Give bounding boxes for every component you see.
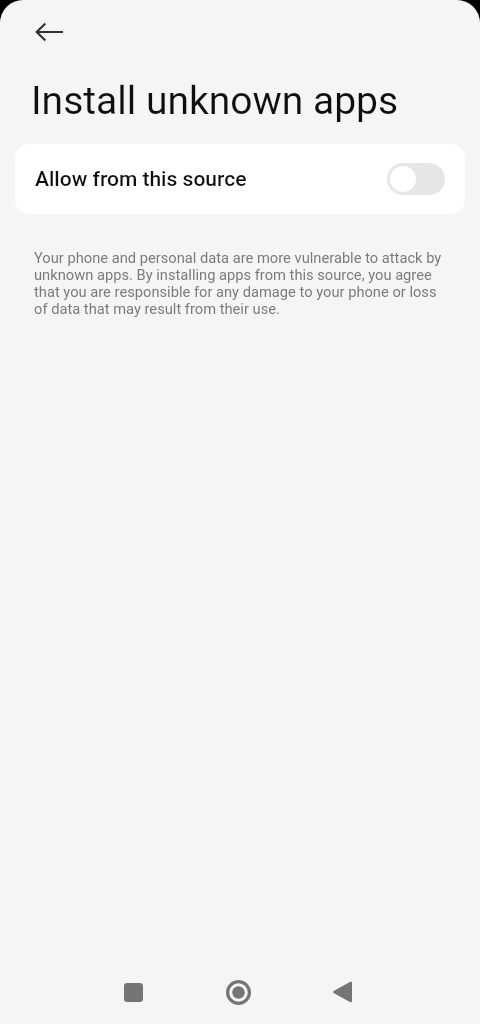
button[interactable]: Navigate up [27, 10, 71, 54]
button[interactable]: Home [214, 968, 262, 1016]
staticText: Your phone and personal data are more vu… [34, 250, 446, 318]
button[interactable]: Back [318, 968, 366, 1016]
button[interactable]: Recent apps [109, 968, 157, 1016]
button[interactable]: Allow from this source [15, 144, 465, 214]
staticText: Allow from this source [35, 167, 247, 192]
staticText: Install unknown apps [31, 78, 399, 124]
